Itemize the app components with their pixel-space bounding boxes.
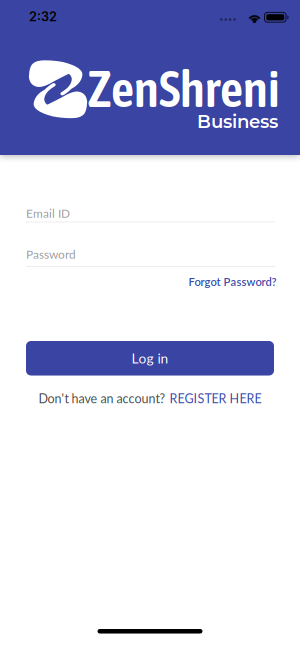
staticText: Email ID xyxy=(26,206,70,220)
staticText: REGISTER HERE xyxy=(169,391,261,406)
staticText: Don't have an account? xyxy=(38,391,165,406)
button[interactable]: Log in xyxy=(26,341,274,375)
staticText: ZenShreni xyxy=(88,59,280,118)
staticText: Forgot Password? xyxy=(188,275,276,288)
staticText: Password xyxy=(26,247,76,261)
button[interactable]: Email ID xyxy=(26,204,275,222)
staticText: 2:32 xyxy=(29,9,57,24)
staticText: Business xyxy=(197,110,278,133)
button[interactable]: Forgot Password? xyxy=(188,275,276,288)
staticText: Log in xyxy=(131,350,168,366)
button[interactable]: Password xyxy=(26,247,275,267)
button[interactable]: REGISTER HERE xyxy=(169,391,261,406)
